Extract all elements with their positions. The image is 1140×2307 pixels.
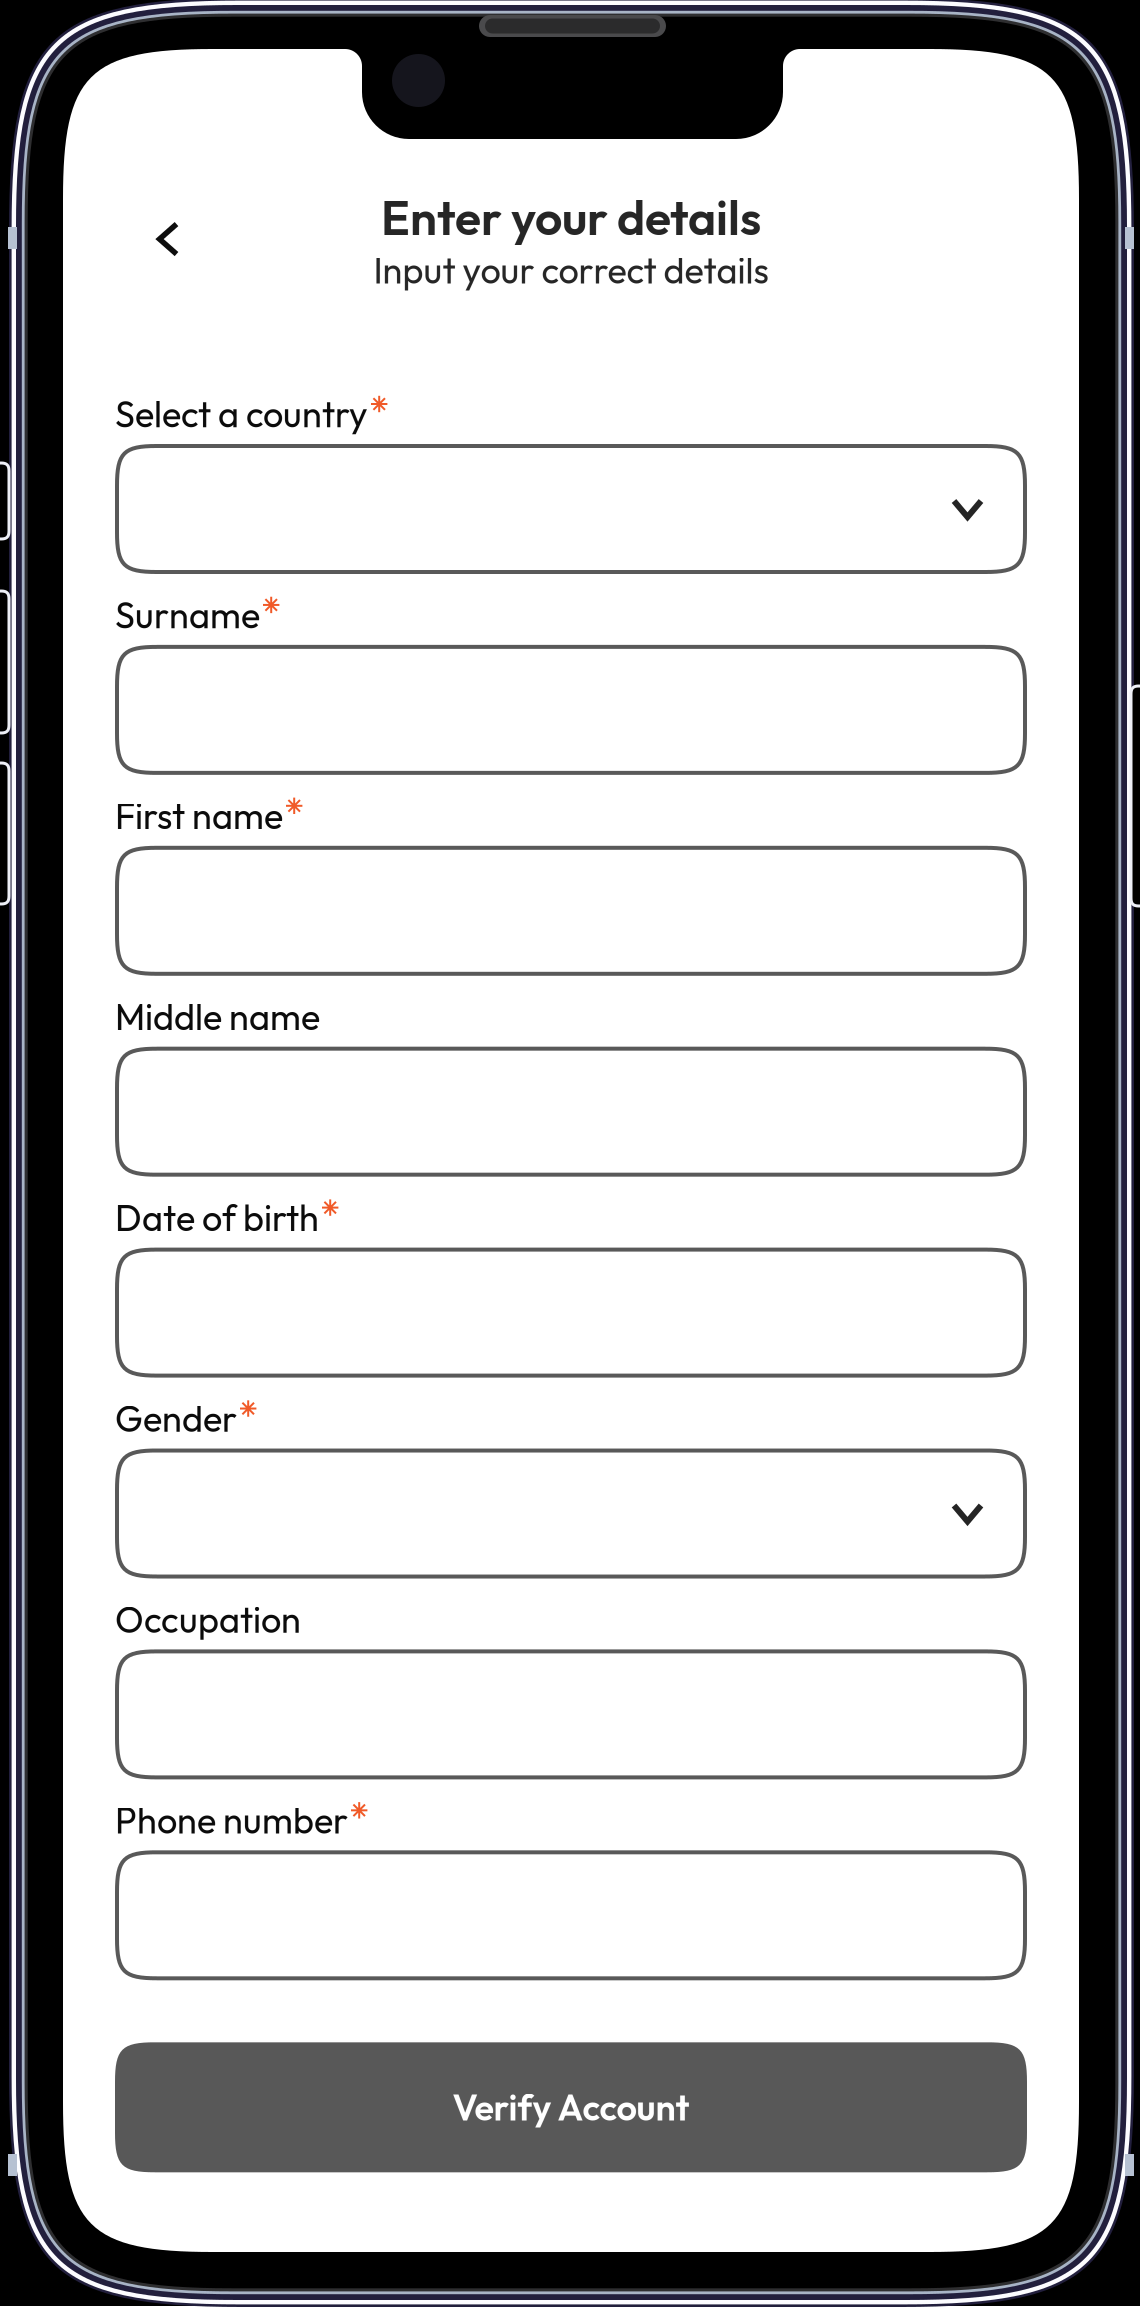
button[interactable] [115,1649,1027,1779]
staticText: Middle name [115,994,320,1039]
button[interactable] [115,645,1027,775]
staticText: Phone number [115,1798,348,1843]
staticText: Gender [115,1396,237,1441]
button[interactable]: Verify Account [115,2042,1027,2172]
staticText: Date of birth [115,1195,319,1240]
button[interactable] [115,1448,1027,1578]
button[interactable]: Back [139,208,197,270]
staticText: Enter your details [381,187,761,248]
button[interactable] [115,444,1027,574]
staticText: Select a country [115,391,368,437]
staticText: First name [115,793,283,838]
button[interactable] [115,1047,1027,1177]
staticText: Surname [115,592,260,638]
button[interactable] [115,1248,1027,1378]
button[interactable] [115,1850,1027,1980]
staticText: Input your correct details [373,248,768,293]
button[interactable] [115,846,1027,976]
staticText: Occupation [115,1597,301,1642]
staticText: Verify Account [452,2085,689,2130]
